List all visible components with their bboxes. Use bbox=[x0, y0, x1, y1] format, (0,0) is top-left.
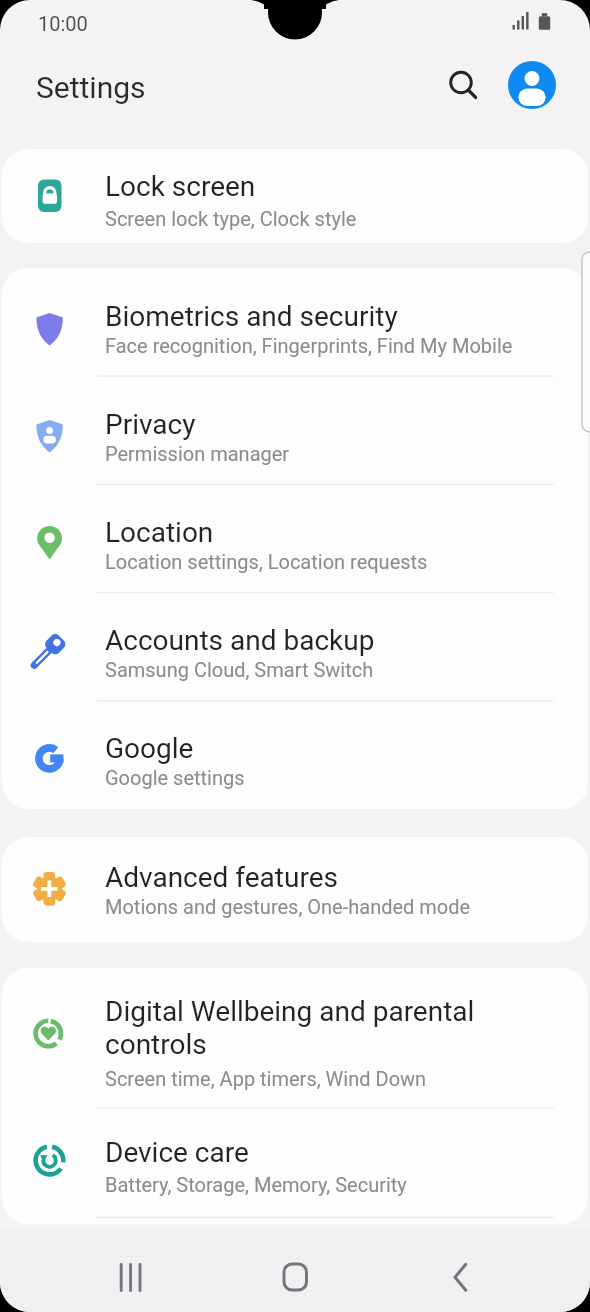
button[interactable] bbox=[441, 62, 483, 104]
staticText: Biometrics and security bbox=[105, 300, 398, 333]
staticText: Lock screen bbox=[105, 170, 256, 203]
staticText: Privacy bbox=[105, 408, 196, 441]
staticText: Google settings bbox=[105, 766, 245, 789]
staticText: Screen time, App timers, Wind Down bbox=[105, 1067, 427, 1090]
button[interactable] bbox=[2, 837, 588, 942]
button[interactable] bbox=[2, 593, 588, 701]
staticText: Screen lock type, Clock style bbox=[105, 207, 357, 230]
staticText: Permission manager bbox=[105, 442, 290, 465]
staticText: Google bbox=[105, 732, 194, 765]
button[interactable] bbox=[95, 1238, 167, 1304]
button[interactable] bbox=[2, 376, 588, 484]
button[interactable] bbox=[2, 701, 588, 809]
button[interactable] bbox=[2, 268, 588, 376]
button[interactable] bbox=[259, 1238, 331, 1304]
staticText: Location settings, Location requests bbox=[105, 550, 428, 573]
button[interactable] bbox=[2, 1108, 588, 1224]
button[interactable] bbox=[2, 968, 588, 1108]
staticText: Motions and gestures, One-handed mode bbox=[105, 895, 471, 918]
staticText: Advanced features bbox=[105, 861, 338, 894]
staticText: Location bbox=[105, 516, 214, 549]
staticText: Digital Wellbeing and parental controls bbox=[105, 995, 475, 1061]
button[interactable] bbox=[508, 61, 556, 109]
button[interactable] bbox=[424, 1238, 496, 1304]
staticText: Face recognition, Fingerprints, Find My … bbox=[105, 334, 513, 357]
staticText: Device care bbox=[105, 1136, 249, 1169]
button[interactable] bbox=[2, 484, 588, 592]
staticText: Battery, Storage, Memory, Security bbox=[105, 1173, 407, 1196]
staticText: Settings bbox=[36, 70, 146, 105]
staticText: Accounts and backup bbox=[105, 624, 375, 657]
staticText: 10:00 bbox=[38, 12, 88, 35]
staticText: Samsung Cloud, Smart Switch bbox=[105, 658, 374, 681]
button[interactable] bbox=[2, 149, 588, 243]
